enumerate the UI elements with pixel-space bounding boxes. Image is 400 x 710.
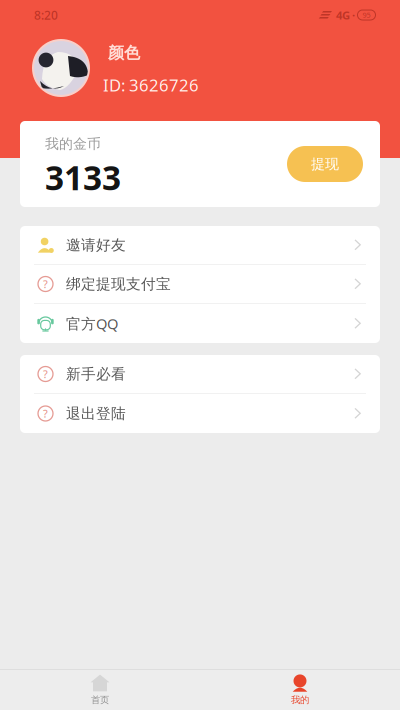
staticText: 8:20: [34, 7, 58, 23]
staticText: 绑定提现支付宝: [66, 275, 171, 293]
button[interactable]: 我的: [200, 674, 400, 706]
button[interactable]: 提现: [287, 146, 363, 182]
staticText: ?: [43, 277, 48, 291]
staticText: 我的金币: [45, 135, 101, 153]
staticText: 首页: [91, 694, 109, 706]
staticText: ?: [43, 367, 48, 381]
staticText: 3133: [45, 154, 121, 200]
button[interactable]: 官方QQ: [20, 304, 380, 343]
staticText: 邀请好友: [66, 236, 126, 254]
button[interactable]: 邀请好友: [20, 226, 380, 265]
staticText: 95: [362, 10, 370, 20]
staticText: 官方QQ: [66, 313, 118, 333]
button[interactable]: ?: [20, 265, 380, 304]
staticText: ·: [352, 7, 355, 23]
staticText: ID: 3626726: [103, 74, 199, 96]
staticText: 颜色: [108, 43, 140, 63]
staticText: ?: [43, 406, 48, 421]
button[interactable]: ?: [20, 355, 380, 394]
button[interactable]: ?: [20, 394, 380, 433]
staticText: 退出登陆: [66, 404, 126, 423]
staticText: 我的: [291, 694, 309, 706]
staticText: 4G: [336, 7, 350, 23]
button[interactable]: 首页: [0, 674, 200, 706]
staticText: 新手必看: [66, 365, 126, 383]
staticText: 提现: [311, 155, 339, 173]
